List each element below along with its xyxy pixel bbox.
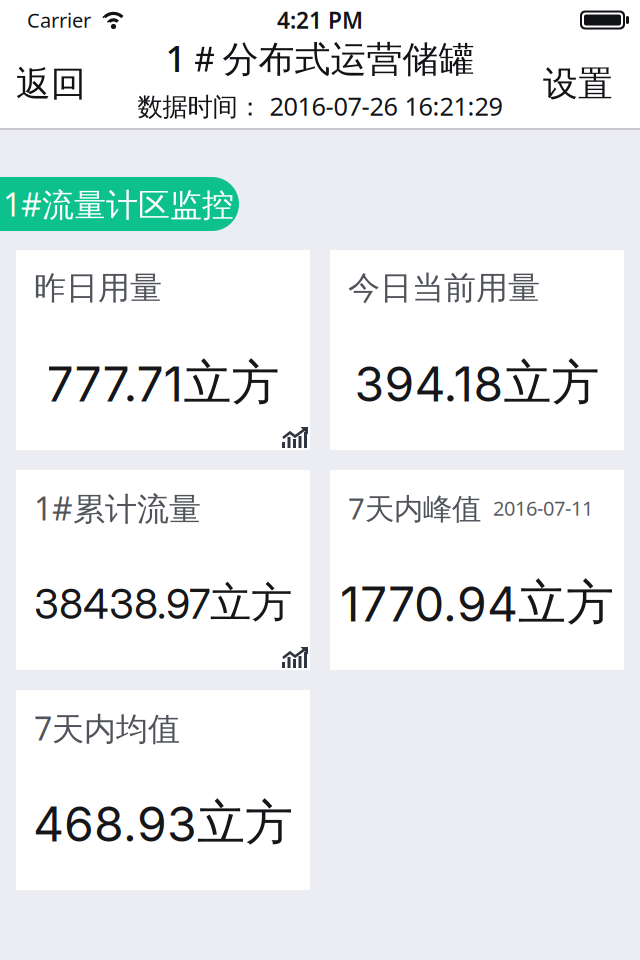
staticText: 1#累计流量 <box>34 487 201 529</box>
staticText: 7天内峰值 <box>348 488 481 527</box>
staticText: 468.93立方 <box>33 793 293 853</box>
staticText: 数据时间： 2016-07-26 16:21:29 <box>137 89 502 123</box>
staticText: 777.71立方 <box>46 353 279 413</box>
staticText: Carrier <box>27 7 91 33</box>
staticText: 昨日用量 <box>34 268 162 308</box>
staticText: 今日当前用量 <box>348 268 540 308</box>
staticText: 38438.97立方 <box>34 577 292 629</box>
staticText: 7天内均值 <box>34 707 180 749</box>
staticText: 394.18立方 <box>354 353 599 413</box>
button[interactable]: 1#累计流量 <box>16 470 310 670</box>
staticText: 2016-07-11 <box>493 495 593 521</box>
staticText: 设置 <box>543 63 613 105</box>
staticText: 返回 <box>16 63 86 105</box>
staticText: 4:21 PM <box>277 5 363 35</box>
staticText: 1770.94立方 <box>340 573 614 633</box>
button[interactable]: 返回 <box>0 63 86 105</box>
button[interactable]: 设置 <box>543 63 640 105</box>
staticText: 1#流量计区监控 <box>3 183 234 225</box>
button[interactable]: 昨日用量 <box>16 250 310 450</box>
staticText: 1＃分布式运营储罐 <box>165 34 474 82</box>
